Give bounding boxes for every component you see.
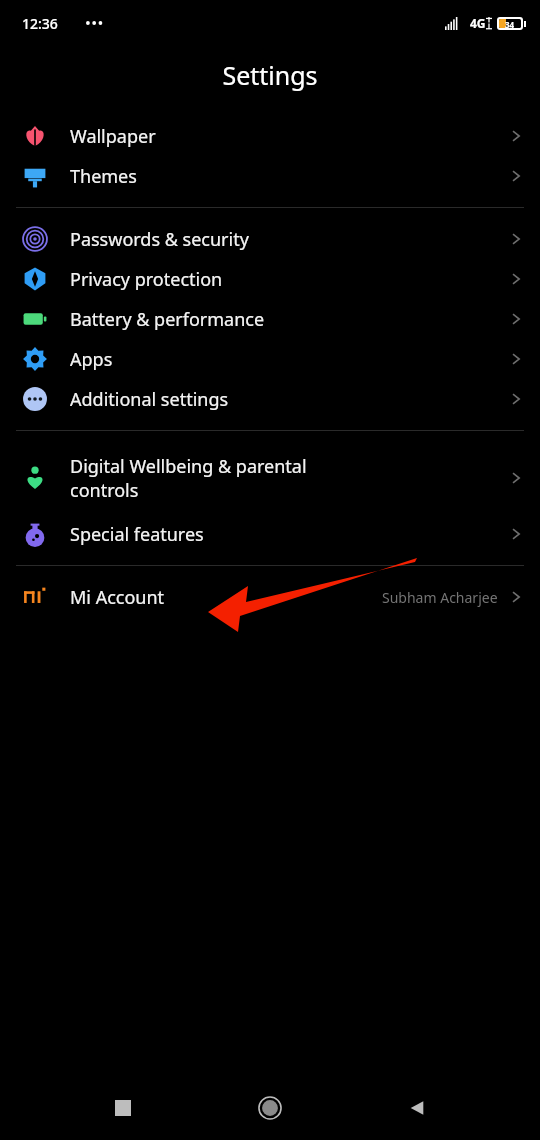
staticText: Additional settings [70, 387, 506, 412]
staticText: Subham Acharjee [382, 588, 498, 607]
staticText: Battery & performance [70, 307, 506, 332]
staticText: 12:36 [22, 14, 58, 33]
staticText: Privacy protection [70, 267, 506, 292]
button[interactable]: Privacy protection [0, 259, 540, 299]
button[interactable]: Passwords & security [0, 219, 540, 259]
button[interactable]: Back [393, 1084, 441, 1132]
button[interactable]: Mi Account [0, 577, 540, 617]
staticText: Mi Account [70, 585, 382, 610]
button[interactable]: Battery & performance [0, 299, 540, 339]
button[interactable]: Digital Wellbeing & parental controls [0, 442, 540, 514]
button[interactable]: Themes [0, 156, 540, 196]
staticText: Digital Wellbeing & parental controls [70, 454, 506, 502]
staticText: Passwords & security [70, 227, 506, 252]
staticText: 4G [470, 15, 486, 31]
button[interactable]: Recent apps [99, 1084, 147, 1132]
staticText: Special features [70, 522, 506, 547]
button[interactable]: Wallpaper [0, 116, 540, 156]
button[interactable]: Home [246, 1084, 294, 1132]
button[interactable]: Special features [0, 514, 540, 554]
button[interactable]: Additional settings [0, 379, 540, 419]
staticText: Settings [222, 58, 318, 92]
staticText: Apps [70, 347, 506, 372]
staticText: 34 [505, 19, 515, 28]
button[interactable]: Apps [0, 339, 540, 379]
staticText: Wallpaper [70, 124, 506, 149]
staticText: Themes [70, 164, 506, 189]
